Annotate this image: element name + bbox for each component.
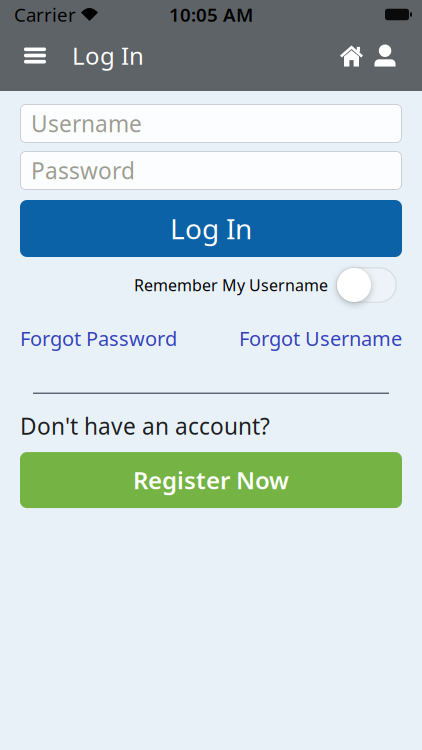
staticText: Log In <box>170 210 252 247</box>
staticText: Register Now <box>133 464 289 496</box>
staticText: Log In <box>72 40 144 71</box>
staticText: Forgot Password <box>20 325 177 352</box>
button[interactable]: Log In <box>20 200 402 257</box>
textField[interactable]: Username <box>31 108 394 138</box>
button[interactable]: Register Now <box>20 452 402 508</box>
button[interactable]: Forgot Password <box>20 325 177 352</box>
staticText: Password <box>31 155 135 185</box>
button[interactable]: Remember My Username <box>20 267 402 303</box>
staticText: Remember My Username <box>134 274 328 296</box>
button[interactable]: Menu <box>24 41 46 69</box>
secureTextField[interactable]: Password <box>31 155 394 185</box>
staticText: Don't have an account? <box>20 411 270 441</box>
button[interactable]: Account <box>374 44 396 66</box>
staticText: 10:05 AM <box>169 2 253 27</box>
staticText: Carrier <box>14 2 76 27</box>
button[interactable]: Forgot Username <box>239 325 402 352</box>
staticText: Forgot Username <box>239 325 402 352</box>
button[interactable]: Home <box>340 44 363 66</box>
staticText: Username <box>31 108 142 138</box>
